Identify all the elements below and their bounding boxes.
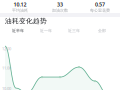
staticText: 10.00 (2, 86, 11, 90)
staticText: 33 (57, 1, 63, 8)
staticText: 油耗变化趋势 (5, 17, 47, 25)
button[interactable]: 全部 (88, 28, 116, 33)
staticText: 每公里花费 (90, 8, 110, 13)
staticText: 10.12 (13, 1, 26, 8)
staticText: 近三年 (68, 28, 80, 33)
button[interactable]: 近三年 (60, 28, 88, 33)
staticText: 11.00 (2, 65, 11, 71)
staticText: 12.00 (2, 46, 11, 51)
button[interactable]: 近半年 (4, 28, 32, 33)
button[interactable]: 近一年 (32, 28, 60, 33)
staticText: 平均油耗 (12, 8, 28, 13)
staticText: 全部 (98, 28, 106, 33)
staticText: 0.57 (95, 1, 105, 8)
staticText: 加油次数 (52, 8, 68, 13)
staticText: 近半年 (12, 28, 24, 33)
staticText: 近一年 (40, 28, 52, 33)
